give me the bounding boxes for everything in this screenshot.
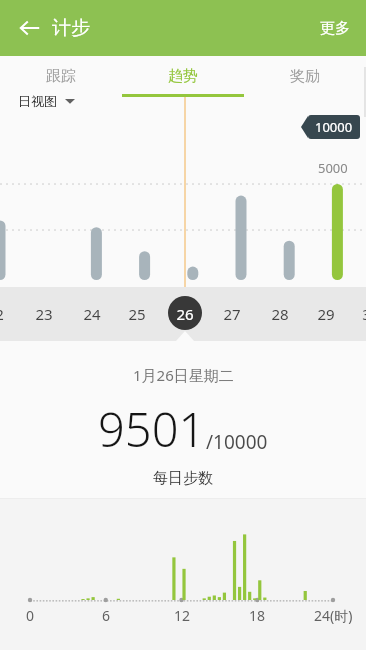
staticText: 2 (0, 304, 4, 324)
staticText: 1月26日星期二 (133, 365, 234, 385)
staticText: 0 (26, 606, 35, 625)
button[interactable]: 跟踪 (0, 56, 122, 97)
staticText: 24(时) (314, 606, 353, 625)
button[interactable]: 23 (24, 304, 64, 324)
staticText: 26 (176, 304, 194, 324)
staticText: /10000 (206, 429, 268, 455)
button[interactable]: 趋势 (122, 56, 244, 97)
staticText: 29 (317, 304, 335, 324)
staticText: 27 (223, 304, 241, 324)
staticText: 3 (362, 304, 366, 324)
button[interactable]: 3 (346, 304, 366, 324)
button[interactable]: 24 (72, 304, 112, 324)
staticText: 24 (83, 304, 101, 324)
staticText: 18 (249, 606, 266, 625)
staticText: 9501 (98, 397, 206, 461)
staticText: 每日步数 (153, 469, 213, 488)
staticText: 28 (271, 304, 289, 324)
staticText: 计步 (52, 16, 90, 40)
staticText: 日视图 (18, 93, 57, 109)
staticText: 更多 (320, 19, 350, 38)
button[interactable]: 2 (0, 304, 19, 324)
button[interactable]: 27 (212, 304, 252, 324)
staticText: 25 (128, 304, 146, 324)
button[interactable]: 奖励 (244, 56, 366, 97)
staticText: 奖励 (290, 67, 320, 86)
button[interactable]: 28 (260, 304, 300, 324)
button[interactable] (168, 296, 202, 330)
staticText: 趋势 (168, 67, 198, 86)
button[interactable]: 25 (117, 304, 157, 324)
staticText: 6 (102, 606, 111, 625)
staticText: 23 (35, 304, 53, 324)
button[interactable]: Back (8, 6, 52, 50)
staticText: 5000 (318, 159, 348, 177)
staticText: 12 (174, 606, 191, 625)
button[interactable]: 更多 (304, 5, 366, 52)
button[interactable]: 26 (165, 304, 205, 324)
staticText: 跟踪 (46, 67, 76, 86)
button[interactable]: 日视图 (18, 93, 75, 109)
staticText: 10000 (315, 118, 353, 136)
button[interactable]: 29 (306, 304, 346, 324)
